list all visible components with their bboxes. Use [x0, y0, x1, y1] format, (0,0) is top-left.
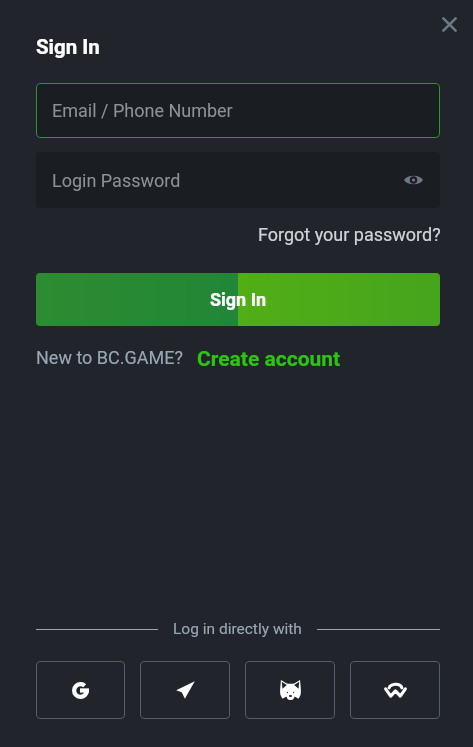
- button[interactable]: Login Password: [36, 152, 440, 208]
- button[interactable]: Sign in with Google: [36, 661, 125, 719]
- button[interactable]: Forgot your password?: [250, 220, 449, 249]
- staticText: Sign In: [210, 289, 267, 310]
- button[interactable]: Sign in with WalletConnect: [350, 661, 440, 719]
- button[interactable]: Show password: [396, 163, 430, 197]
- button[interactable]: Create account: [197, 347, 341, 372]
- staticText: Create account: [197, 347, 341, 372]
- button[interactable]: Sign in with MetaMask: [245, 661, 335, 719]
- staticText: Sign In: [36, 35, 100, 59]
- staticText: New to BC.GAME?: [36, 347, 183, 368]
- staticText: Login Password: [52, 170, 181, 191]
- staticText: Forgot your password?: [258, 224, 441, 245]
- button[interactable]: Email / Phone Number: [36, 83, 440, 138]
- button[interactable]: Sign in with Telegram: [140, 661, 230, 719]
- staticText: Email / Phone Number: [52, 100, 233, 121]
- staticText: Log in directly with: [173, 620, 302, 638]
- button[interactable]: Close: [432, 7, 466, 41]
- button[interactable]: Sign In: [36, 273, 440, 326]
